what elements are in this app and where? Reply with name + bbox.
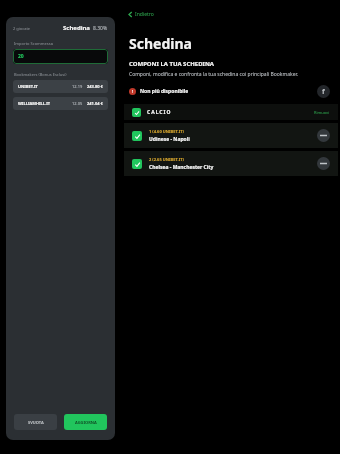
staticText: AGGIORNA	[75, 420, 97, 425]
button[interactable]: 20	[13, 49, 108, 64]
staticText: Udinese - Napoli	[149, 136, 190, 143]
button[interactable]: Indietro	[124, 9, 158, 20]
button[interactable]: WILLIAMHILL.IT	[13, 97, 108, 110]
staticText: WILLIAMHILL.IT	[18, 101, 51, 106]
staticText: CALCIO	[147, 109, 172, 116]
staticText: 8.30%	[93, 25, 108, 32]
staticText: Rimuovi	[314, 110, 330, 115]
button[interactable]: Rimuovi evento	[317, 157, 330, 170]
staticText: 20	[18, 53, 24, 60]
staticText: Bookmakers (Bonus Esclusi)	[14, 72, 67, 77]
button[interactable]: Condividi su Facebook	[317, 85, 330, 98]
staticText: 12.05	[72, 101, 83, 106]
staticText: Chelsea - Manchester City	[149, 164, 214, 171]
staticText: COMPONI LA TUA SCHEDINA	[129, 60, 214, 68]
staticText: 2 giocate	[13, 26, 31, 31]
staticText: Componi, modifica e confronta la tua sch…	[129, 71, 299, 78]
staticText: UNIBET.IT	[18, 84, 38, 89]
staticText: Non più disponibile	[140, 88, 189, 95]
button[interactable]: Seleziona	[132, 159, 142, 169]
staticText: Indietro	[135, 11, 154, 18]
button[interactable]: Seleziona	[132, 108, 141, 117]
button[interactable]: Seleziona	[124, 151, 338, 176]
staticText: SVUOTA	[28, 420, 44, 425]
staticText: !	[132, 89, 134, 94]
staticText: 243.80 €	[87, 84, 103, 89]
staticText: Importo Scommessa	[14, 41, 53, 46]
staticText: 2 (2.65 UNIBET.IT)	[149, 157, 184, 162]
button[interactable]: SVUOTA	[14, 414, 57, 430]
button[interactable]: Rimuovi evento	[317, 129, 330, 142]
staticText: Schedina	[129, 34, 192, 53]
button[interactable]: UNIBET.IT	[13, 80, 108, 93]
staticText: Schedina	[63, 24, 90, 32]
staticText: 12.19	[72, 84, 83, 89]
button[interactable]: Seleziona	[124, 104, 338, 120]
staticText: f	[322, 87, 325, 97]
button[interactable]: AGGIORNA	[64, 414, 107, 430]
button[interactable]: Seleziona	[124, 123, 338, 148]
staticText: 241.04 €	[87, 101, 103, 106]
button[interactable]: Seleziona	[132, 131, 142, 141]
staticText: 1 (4.60 UNIBET.IT)	[149, 129, 184, 134]
